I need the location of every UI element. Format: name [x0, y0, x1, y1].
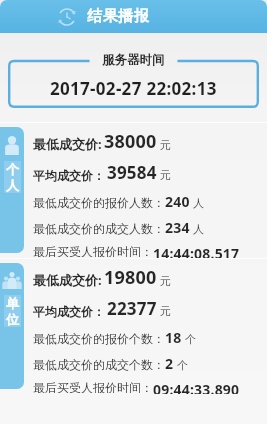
staticText: 2	[165, 354, 174, 373]
other: Refresh	[57, 7, 77, 27]
staticText: 人	[193, 222, 204, 236]
button[interactable]: 个人	[0, 127, 24, 253]
staticText: 39584	[107, 161, 157, 184]
staticText: 结果播报	[87, 7, 149, 26]
staticText: 最低成交价:	[33, 271, 102, 289]
staticText: 最低成交价的报价个数：	[33, 331, 165, 346]
staticText: 最低成交价:	[33, 135, 102, 153]
staticText: 2017-02-27 22:02:13	[50, 77, 217, 100]
staticText: 元	[160, 304, 171, 318]
staticText: 元	[160, 138, 171, 152]
staticText: 18	[165, 328, 182, 347]
staticText: 最后买受人报价时间：	[33, 380, 153, 393]
staticText: 平均成交价：	[33, 304, 105, 319]
staticText: 09:44:33.890	[153, 380, 240, 394]
staticText: 服务器时间	[102, 52, 165, 68]
staticText: 元	[160, 168, 171, 182]
staticText: 单	[6, 295, 19, 311]
staticText: 平均成交价：	[33, 168, 105, 183]
staticText: 240	[165, 192, 190, 211]
staticText: 位	[6, 311, 19, 327]
staticText: 人	[193, 196, 204, 210]
staticText: 最低成交价的成交个数：	[33, 357, 165, 372]
staticText: 个	[177, 358, 188, 372]
staticText: 人	[6, 177, 19, 193]
staticText: 234	[165, 218, 190, 237]
staticText: 最后买受人报价时间：	[33, 244, 153, 257]
staticText: 元	[160, 274, 171, 288]
staticText: 38000	[104, 129, 157, 154]
staticText: 14:44:08.517	[153, 244, 240, 258]
staticText: 最低成交价的成交人数：	[33, 221, 165, 236]
staticText: 最低成交价的报价人数：	[33, 195, 165, 210]
staticText: 个	[6, 161, 19, 177]
staticText: 个	[185, 332, 196, 346]
button[interactable]: Refresh	[0, 0, 267, 33]
staticText: 22377	[107, 297, 157, 320]
button[interactable]: 单位	[0, 263, 24, 389]
staticText: 19800	[104, 265, 157, 290]
